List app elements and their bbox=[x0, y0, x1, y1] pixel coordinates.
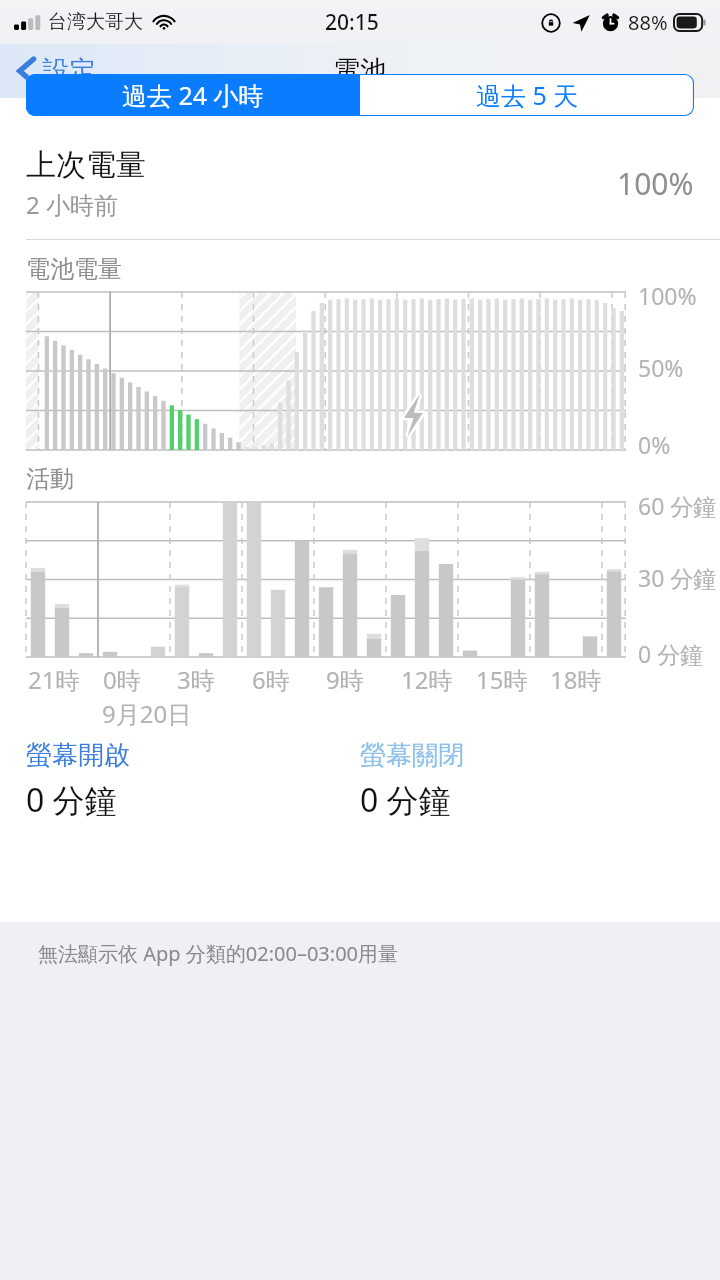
staticText: 88% bbox=[628, 9, 668, 36]
staticText: 60 分鐘 bbox=[638, 490, 717, 521]
button[interactable]: 過去 5 天 bbox=[360, 74, 694, 116]
staticText: 0 分鐘 bbox=[638, 638, 704, 669]
staticText: 6時 bbox=[252, 663, 290, 696]
staticText: 12時 bbox=[401, 663, 453, 696]
staticText: 20:15 bbox=[325, 8, 379, 37]
staticText: 21時 bbox=[28, 663, 80, 696]
staticText: 過去 5 天 bbox=[476, 78, 579, 112]
staticText: 螢幕關閉 bbox=[360, 739, 464, 772]
staticText: 台湾大哥大 bbox=[48, 10, 143, 34]
button[interactable]: 過去 24 小時 bbox=[26, 74, 360, 116]
button[interactable]: 設定 bbox=[0, 48, 108, 94]
staticText: 上次電量 bbox=[26, 146, 146, 184]
staticText: 9時 bbox=[326, 663, 364, 696]
staticText: 18時 bbox=[550, 663, 602, 696]
staticText: 0% bbox=[638, 429, 671, 460]
staticText: 100% bbox=[617, 163, 694, 204]
staticText: 9月20日 bbox=[102, 697, 192, 730]
staticText: 0時 bbox=[103, 663, 141, 696]
staticText: 電池 bbox=[333, 54, 387, 88]
staticText: 30 分鐘 bbox=[638, 562, 717, 593]
staticText: 螢幕開啟 bbox=[26, 739, 130, 772]
staticText: 3時 bbox=[177, 663, 215, 696]
staticText: 2 小時前 bbox=[26, 188, 118, 221]
staticText: 設定 bbox=[42, 54, 96, 88]
staticText: 活動 bbox=[26, 464, 74, 494]
staticText: 無法顯示依 App 分類的02:00–03:00用量 bbox=[38, 940, 399, 967]
staticText: 50% bbox=[638, 352, 684, 383]
staticText: 15時 bbox=[476, 663, 528, 696]
staticText: 電池電量 bbox=[26, 254, 122, 284]
staticText: 0 分鐘 bbox=[26, 778, 117, 822]
staticText: 0 分鐘 bbox=[360, 778, 451, 822]
staticText: 100% bbox=[638, 280, 697, 311]
staticText: 過去 24 小時 bbox=[122, 78, 264, 112]
